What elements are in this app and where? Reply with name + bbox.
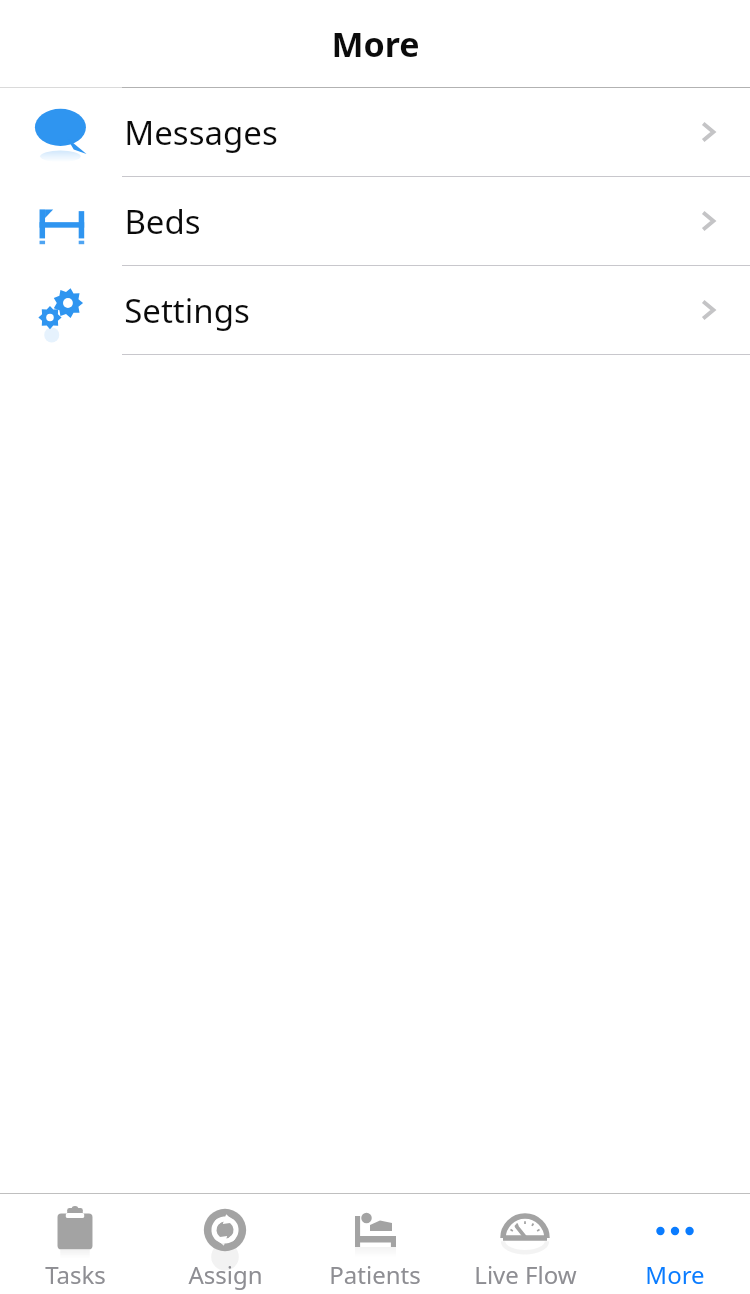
staticText: More bbox=[645, 1258, 705, 1291]
staticText: Live Flow bbox=[474, 1258, 577, 1291]
button[interactable]: Messages bbox=[0, 88, 750, 176]
staticText: More bbox=[331, 21, 420, 67]
button[interactable]: Assign bbox=[150, 1194, 300, 1294]
staticText: Tasks bbox=[45, 1258, 106, 1291]
button[interactable]: Beds bbox=[0, 177, 750, 265]
staticText: Messages bbox=[124, 110, 278, 155]
button[interactable]: Tasks bbox=[0, 1194, 150, 1294]
staticText: Patients bbox=[329, 1258, 421, 1291]
button[interactable]: More bbox=[600, 1194, 750, 1294]
staticText: Assign bbox=[188, 1258, 263, 1291]
staticText: Settings bbox=[124, 288, 250, 333]
button[interactable]: Settings bbox=[0, 266, 750, 354]
staticText: Beds bbox=[124, 199, 201, 244]
button[interactable]: Live Flow bbox=[450, 1194, 600, 1294]
button[interactable]: Patients bbox=[300, 1194, 450, 1294]
